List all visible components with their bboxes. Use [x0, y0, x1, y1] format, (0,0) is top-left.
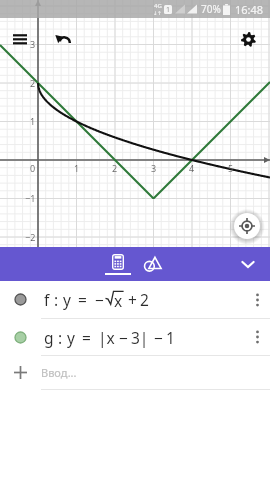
staticText: 0: [30, 162, 36, 174]
staticText: 1: [30, 115, 36, 127]
staticText: 3|: [131, 327, 149, 348]
staticText: 4: [189, 162, 195, 174]
staticText: 1: [74, 162, 80, 174]
staticText: 1: [166, 5, 171, 14]
button[interactable]: g: [0, 319, 270, 355]
staticText: 2: [140, 289, 149, 310]
staticText: 5: [228, 162, 234, 174]
button[interactable]: Collapse panel: [234, 250, 262, 278]
button[interactable]: Menu: [7, 26, 33, 52]
button[interactable]: More options: [244, 281, 270, 318]
staticText: 16:48: [235, 2, 264, 17]
staticText: ↓↑: [153, 10, 162, 16]
staticText: g: [44, 327, 54, 348]
staticText: 70%: [201, 2, 221, 16]
button[interactable]: Tools: [139, 247, 167, 281]
button[interactable]: More options: [244, 319, 270, 355]
staticText: 3: [151, 162, 157, 174]
staticText: y: [63, 289, 71, 310]
staticText: Ввод...: [41, 365, 77, 380]
staticText: x: [114, 290, 123, 309]
staticText: −: [95, 289, 104, 310]
button[interactable]: f: [0, 281, 270, 318]
staticText: 1: [166, 327, 175, 348]
staticText: −2: [25, 231, 36, 243]
staticText: 3: [30, 38, 36, 50]
staticText: y: [67, 327, 75, 348]
button[interactable]: Undo: [50, 26, 76, 52]
staticText: 2: [112, 162, 118, 174]
staticText: −: [119, 327, 128, 348]
staticText: f: [44, 289, 50, 310]
staticText: =: [82, 327, 91, 348]
staticText: :: [54, 289, 59, 310]
staticText: :: [58, 327, 63, 348]
staticText: 4G: [154, 2, 162, 10]
staticText: −: [154, 327, 163, 348]
staticText: =: [78, 289, 87, 310]
button[interactable]: Center view: [234, 213, 260, 239]
button[interactable]: Ввод...: [0, 356, 270, 389]
staticText: |x: [98, 327, 115, 348]
button[interactable]: Settings: [235, 26, 262, 53]
staticText: −1: [25, 192, 36, 204]
staticText: +: [128, 289, 137, 310]
button[interactable]: Algebra view: [92, 247, 144, 281]
staticText: 2: [30, 77, 36, 89]
